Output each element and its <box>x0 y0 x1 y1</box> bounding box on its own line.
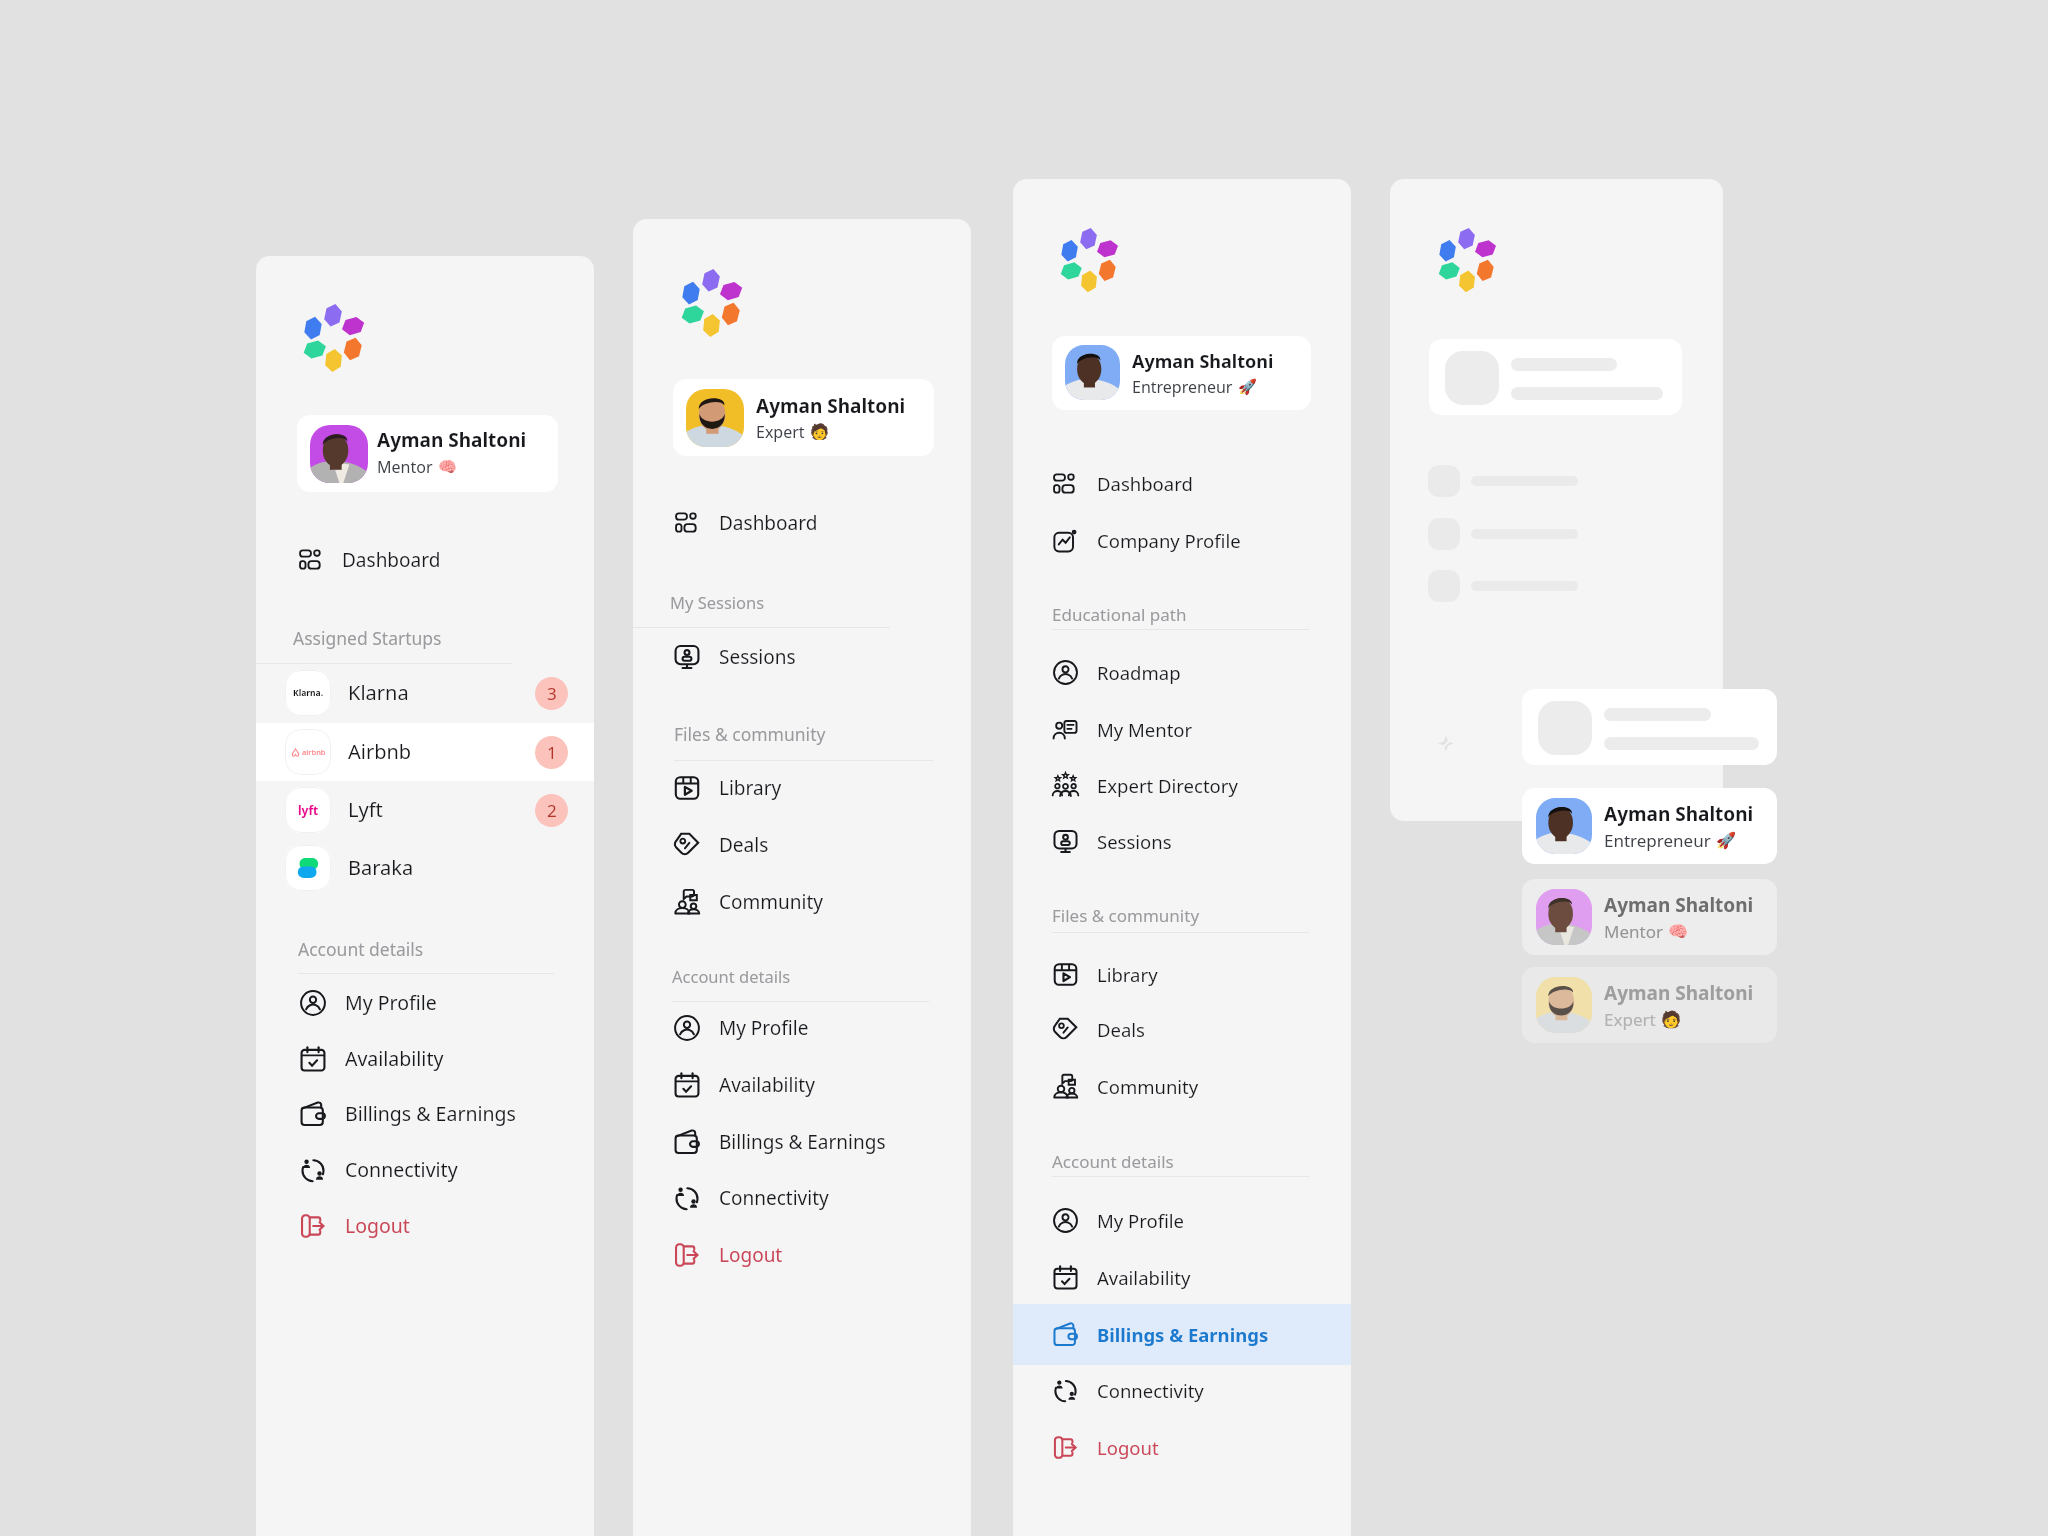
staticText: Account details <box>672 965 791 987</box>
button[interactable]: Loading profile <box>1522 689 1777 765</box>
staticText: Community <box>719 889 823 915</box>
button[interactable]: Sessions <box>633 628 971 685</box>
button[interactable]: Community <box>1013 1058 1351 1115</box>
staticText: Ayman Shaltoni <box>1604 980 1754 1006</box>
staticText: 🧠 <box>438 458 457 476</box>
staticText: Availability <box>345 1045 444 1072</box>
button[interactable]: Logout <box>633 1226 971 1283</box>
staticText: 1 <box>547 741 557 764</box>
button[interactable]: Billings & Earnings <box>1013 1304 1351 1365</box>
button[interactable]: Deals <box>1013 1001 1351 1058</box>
button[interactable]: Home <box>1062 226 1115 279</box>
button[interactable]: Sessions <box>1013 813 1351 870</box>
staticText: Connectivity <box>719 1185 829 1211</box>
staticText: 🚀 <box>1238 378 1257 396</box>
staticText: Roadmap <box>1097 660 1181 685</box>
button[interactable]: Loading item 2 <box>1390 508 1723 560</box>
button[interactable]: Company Profile <box>1013 512 1351 569</box>
staticText: Billings & Earnings <box>719 1129 886 1155</box>
button[interactable]: Dashboard <box>1013 455 1351 512</box>
staticText: Mentor <box>377 456 433 478</box>
button[interactable]: Klarna. <box>256 664 594 722</box>
button[interactable]: Ayman Shaltoni <box>297 415 558 492</box>
button[interactable]: Logout <box>256 1197 594 1254</box>
staticText: lyft <box>298 802 319 818</box>
button[interactable]: My Profile <box>1013 1192 1351 1249</box>
staticText: Ayman Shaltoni <box>377 427 527 453</box>
button[interactable]: Loading item 1 <box>1390 455 1723 507</box>
button[interactable]: Ayman Shaltoni <box>1522 967 1777 1043</box>
staticText: 3 <box>547 682 557 705</box>
button[interactable]: Dashboard <box>256 531 594 588</box>
button[interactable]: Ayman Shaltoni <box>673 379 934 456</box>
button[interactable]: Billings & Earnings <box>256 1085 594 1142</box>
staticText: Connectivity <box>345 1156 458 1183</box>
button[interactable]: Library <box>633 759 971 816</box>
staticText: Library <box>1097 962 1158 987</box>
button[interactable]: Availability <box>256 1030 594 1087</box>
button[interactable]: lyft <box>256 781 594 839</box>
staticText: Account details <box>1052 1150 1174 1173</box>
staticText: My Mentor <box>1097 717 1193 742</box>
button[interactable]: Ayman Shaltoni <box>1052 336 1311 410</box>
button[interactable]: Loading profile <box>1429 339 1682 415</box>
staticText: Billings & Earnings <box>345 1100 516 1127</box>
staticText: Account details <box>298 937 424 961</box>
button[interactable]: Home <box>683 267 739 323</box>
button[interactable]: Connectivity <box>256 1141 594 1198</box>
button[interactable]: Ayman Shaltoni <box>1522 879 1777 955</box>
staticText: Dashboard <box>342 547 441 573</box>
staticText: Assigned Startups <box>293 626 442 650</box>
staticText: 2 <box>547 799 557 822</box>
button[interactable]: Loading item 3 <box>1390 560 1723 612</box>
staticText: 🧑 <box>1661 1010 1682 1029</box>
button[interactable]: Expert Directory <box>1013 757 1351 814</box>
staticText: Klarna. <box>293 687 324 699</box>
button[interactable]: Baraka <box>256 839 594 897</box>
staticText: Ayman Shaltoni <box>1604 801 1754 827</box>
staticText: Airbnb <box>348 738 412 765</box>
button[interactable]: Library <box>1013 946 1351 1003</box>
staticText: My Profile <box>719 1015 809 1041</box>
button[interactable]: Deals <box>633 816 971 873</box>
staticText: Expert <box>756 421 805 443</box>
button[interactable]: Home <box>1440 226 1493 279</box>
staticText: My Profile <box>1097 1208 1185 1233</box>
staticText: Expert Directory <box>1097 773 1238 798</box>
staticText: Company Profile <box>1097 528 1241 553</box>
staticText: Billings & Earnings <box>1097 1322 1269 1347</box>
staticText: Files & community <box>1052 904 1200 927</box>
staticText: Availability <box>1097 1265 1191 1290</box>
staticText: Ayman Shaltoni <box>1132 349 1274 374</box>
staticText: Logout <box>719 1242 783 1268</box>
button[interactable]: Logout <box>1013 1419 1351 1476</box>
button[interactable]: My Mentor <box>1013 701 1351 758</box>
button[interactable]: Connectivity <box>633 1169 971 1226</box>
button[interactable]: Availability <box>1013 1249 1351 1306</box>
staticText: 🚀 <box>1716 831 1737 850</box>
staticText: Lyft <box>348 796 383 823</box>
staticText: Logout <box>345 1212 410 1239</box>
staticText: Entrepreneur <box>1604 829 1711 852</box>
staticText: 🧑 <box>810 423 829 441</box>
staticText: Dashboard <box>1097 471 1193 496</box>
button[interactable]: Billings & Earnings <box>633 1113 971 1170</box>
button[interactable]: airbnb <box>256 723 594 781</box>
button[interactable]: Community <box>633 873 971 930</box>
button[interactable]: My Profile <box>256 974 594 1031</box>
staticText: Logout <box>1097 1435 1159 1460</box>
staticText: Dashboard <box>719 510 818 536</box>
button[interactable]: Dashboard <box>633 494 971 551</box>
staticText: Ayman Shaltoni <box>756 393 906 419</box>
button[interactable]: My Profile <box>633 999 971 1056</box>
button[interactable]: Roadmap <box>1013 644 1351 701</box>
staticText: Klarna <box>348 679 409 706</box>
staticText: Ayman Shaltoni <box>1604 892 1754 918</box>
staticText: Deals <box>719 832 769 858</box>
button[interactable]: Availability <box>633 1056 971 1113</box>
button[interactable]: Ayman Shaltoni <box>1522 788 1777 864</box>
button[interactable]: Connectivity <box>1013 1362 1351 1419</box>
staticText: Library <box>719 775 782 801</box>
staticText: Entrepreneur <box>1132 376 1233 398</box>
button[interactable]: Home <box>305 302 361 358</box>
